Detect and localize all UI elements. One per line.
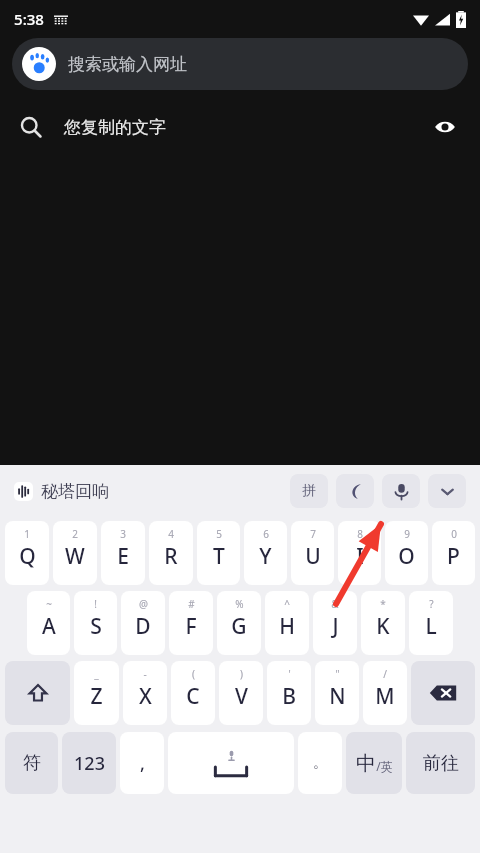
button[interactable]: / (363, 661, 407, 725)
button[interactable]: _ (74, 661, 119, 725)
button[interactable]: ) (219, 661, 263, 725)
staticText: E (117, 542, 129, 571)
button[interactable]: 中 (346, 732, 402, 794)
button[interactable]: & (313, 591, 357, 655)
staticText: 秘塔回响 (41, 481, 109, 502)
staticText: - (143, 667, 147, 681)
staticText: / (383, 667, 387, 681)
button[interactable]: Show (430, 112, 460, 142)
staticText: 5 (216, 527, 222, 541)
staticText: G (231, 612, 247, 641)
button[interactable]: ' (267, 661, 311, 725)
staticText: 您复制的文字 (64, 117, 166, 138)
staticText: 4 (168, 527, 174, 541)
staticText: H (279, 612, 295, 641)
button[interactable]: 符 (5, 732, 58, 794)
staticText: C (186, 682, 200, 711)
button[interactable]: Collapse keyboard (428, 474, 466, 508)
button[interactable]: 2 (53, 521, 97, 585)
button[interactable]: 。 (298, 732, 342, 794)
staticText: 3 (120, 527, 126, 541)
staticText: 123 (74, 751, 105, 776)
staticText: Z (90, 682, 103, 711)
staticText: & (331, 597, 339, 611)
button[interactable]: % (217, 591, 261, 655)
staticText: O (398, 542, 415, 571)
staticText: Y (259, 542, 272, 571)
button[interactable]: # (169, 591, 213, 655)
staticText: @ (139, 597, 148, 611)
button[interactable]: , (120, 732, 164, 794)
button[interactable]: 3 (101, 521, 145, 585)
button[interactable]: " (315, 661, 359, 725)
staticText: D (135, 612, 151, 641)
button[interactable]: 您复制的文字 (0, 98, 480, 156)
staticText: ' (288, 667, 291, 681)
staticText: ? (429, 597, 434, 611)
staticText: 拼 (302, 482, 316, 500)
button[interactable]: - (123, 661, 167, 725)
staticText: ! (94, 597, 97, 611)
button[interactable]: 8 (338, 521, 381, 585)
staticText: K (376, 612, 390, 641)
staticText: % (235, 597, 244, 611)
staticText: P (447, 542, 460, 571)
button[interactable]: Space (168, 732, 294, 794)
staticText: 。 (313, 754, 327, 772)
button[interactable]: * (361, 591, 405, 655)
button[interactable]: 0 (432, 521, 475, 585)
staticText: 符 (23, 752, 41, 775)
staticText: * (380, 597, 386, 611)
staticText: ~ (46, 597, 52, 611)
staticText: A (42, 612, 56, 641)
staticText: 1 (24, 527, 30, 541)
button[interactable]: ! (74, 591, 117, 655)
staticText: 搜索或输入网址 (68, 54, 187, 75)
button[interactable]: 秘塔回响 (14, 481, 109, 502)
staticText: M (375, 682, 395, 711)
staticText: , (140, 751, 145, 776)
button[interactable]: 5 (197, 521, 240, 585)
staticText: V (235, 682, 248, 711)
staticText: W (65, 542, 85, 571)
staticText: 2 (72, 527, 78, 541)
button[interactable]: 6 (244, 521, 287, 585)
button[interactable]: Backspace (411, 661, 475, 725)
staticText: 0 (451, 527, 457, 541)
staticText: " (335, 667, 340, 681)
staticText: /英 (376, 758, 393, 774)
button[interactable]: 1 (5, 521, 49, 585)
staticText: N (329, 682, 346, 711)
staticText: 前往 (423, 752, 459, 775)
button[interactable]: ( (171, 661, 215, 725)
staticText: L (425, 612, 437, 641)
button[interactable]: 4 (149, 521, 193, 585)
staticText: T (213, 542, 225, 571)
button[interactable]: @ (121, 591, 165, 655)
button[interactable]: 前往 (406, 732, 475, 794)
button[interactable]: ~ (27, 591, 70, 655)
staticText: X (139, 682, 152, 711)
staticText: Q (19, 542, 36, 571)
button[interactable]: Pinyin (290, 474, 328, 508)
staticText: 6 (263, 527, 269, 541)
staticText: F (185, 612, 197, 641)
staticText: B (282, 682, 296, 711)
button[interactable]: 123 (62, 732, 116, 794)
staticText: 中 (356, 751, 376, 776)
staticText: 5:38 (14, 9, 44, 29)
staticText: # (188, 597, 195, 611)
button[interactable]: 9 (385, 521, 428, 585)
button[interactable]: ? (409, 591, 453, 655)
staticText: I (356, 542, 364, 571)
button[interactable]: Voice input (382, 474, 420, 508)
button[interactable]: 7 (291, 521, 334, 585)
button[interactable]: ^ (265, 591, 309, 655)
staticText: ( (192, 667, 195, 681)
button[interactable]: Night mode (336, 474, 374, 508)
staticText: U (305, 542, 321, 571)
button[interactable]: Shift (5, 661, 70, 725)
button[interactable]: 搜索或输入网址 (12, 38, 468, 90)
staticText: R (164, 542, 178, 571)
staticText: ^ (284, 597, 290, 611)
